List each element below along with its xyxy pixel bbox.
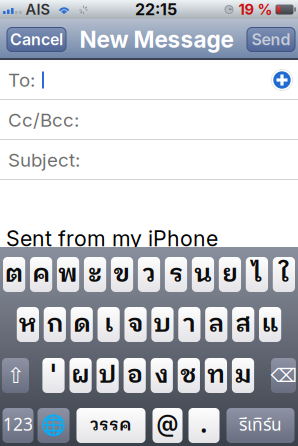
staticText: @	[156, 405, 179, 446]
staticText: า	[183, 304, 196, 345]
staticText: New Message	[79, 26, 233, 53]
button[interactable]: วรรค	[76, 408, 145, 443]
staticText: ท	[207, 355, 225, 396]
button[interactable]: ย	[219, 257, 241, 292]
staticText: อ	[127, 355, 143, 396]
staticText: ด	[73, 304, 91, 345]
staticText: ก	[46, 304, 63, 345]
button[interactable]: ห	[17, 307, 39, 342]
button[interactable]: ไ	[246, 257, 268, 292]
staticText: 🌐	[41, 414, 66, 437]
staticText: ช	[180, 355, 197, 396]
button[interactable]: ล	[205, 307, 227, 342]
button[interactable]: บ	[151, 307, 174, 342]
button[interactable]: ง	[151, 358, 173, 393]
button[interactable]: ท	[205, 358, 227, 393]
staticText: ไ	[252, 254, 262, 295]
staticText: บ	[153, 304, 171, 345]
staticText: ว	[142, 254, 155, 295]
staticText: พ	[58, 254, 78, 295]
staticText: เ	[104, 304, 113, 345]
staticText: ส	[235, 304, 251, 345]
staticText: Sent from my iPhone	[6, 226, 218, 251]
button[interactable]: จ	[124, 307, 147, 342]
button[interactable]: น	[192, 257, 214, 292]
staticText: ข	[113, 254, 130, 295]
staticText: ร	[169, 254, 183, 295]
button[interactable]: ก	[44, 307, 66, 342]
staticText: ค	[32, 254, 50, 295]
button[interactable]: ช	[178, 358, 200, 393]
button[interactable]: Cancel	[7, 27, 66, 51]
button[interactable]: 🌐	[37, 408, 69, 443]
button[interactable]: ค	[30, 257, 52, 292]
staticText: AIS	[26, 1, 51, 18]
button[interactable]: า	[178, 307, 200, 342]
button[interactable]: เ	[97, 307, 120, 342]
staticText: ง	[154, 355, 169, 396]
staticText: Send	[251, 30, 290, 49]
button[interactable]: @	[152, 408, 182, 443]
staticText: .	[200, 405, 208, 446]
button[interactable]: ม	[232, 358, 254, 393]
staticText: 123	[3, 412, 33, 439]
staticText: ใ	[279, 254, 289, 295]
staticText: Cancel	[10, 30, 63, 49]
button[interactable]: ข	[111, 257, 133, 292]
staticText: ม	[234, 355, 251, 396]
staticText: ป	[99, 355, 117, 396]
button[interactable]: ร	[165, 257, 187, 292]
button[interactable]: ใ	[273, 257, 295, 292]
button[interactable]: ว	[138, 257, 160, 292]
staticText: น	[194, 254, 212, 295]
button[interactable]: ⌫	[271, 358, 296, 393]
staticText: ะ	[88, 254, 102, 295]
staticText: '	[50, 355, 57, 396]
button[interactable]: แ	[259, 307, 281, 342]
staticText: ล	[208, 304, 224, 345]
staticText: ห	[18, 304, 37, 345]
staticText: ⇧	[6, 363, 24, 388]
staticText: 19 %	[238, 1, 272, 18]
button[interactable]: ป	[96, 358, 119, 393]
staticText: รีเทิร์น	[239, 412, 282, 439]
button[interactable]: ส	[232, 307, 254, 342]
button[interactable]: รีเทิร์น	[226, 408, 294, 443]
button[interactable]: ด	[71, 307, 93, 342]
staticText: ต	[5, 254, 24, 295]
button[interactable]: Send	[247, 27, 295, 51]
staticText: Cc/Bcc:	[8, 109, 79, 131]
staticText: ผ	[71, 355, 90, 396]
staticText: To:	[8, 69, 35, 91]
staticText: จ	[127, 304, 143, 345]
staticText: 22:15	[135, 0, 177, 19]
button[interactable]: .	[188, 408, 219, 443]
staticText: แ	[262, 304, 279, 345]
button[interactable]: ผ	[69, 358, 92, 393]
button[interactable]: ะ	[84, 257, 106, 292]
staticText: Subject:	[8, 149, 80, 171]
button[interactable]: อ	[124, 358, 146, 393]
staticText: วรรค	[90, 411, 132, 440]
staticText: ย	[222, 254, 238, 295]
button[interactable]: พ	[57, 257, 79, 292]
button[interactable]: ต	[3, 257, 25, 292]
button[interactable]: ⇧	[2, 358, 29, 393]
button[interactable]: Add contact	[270, 68, 294, 92]
button[interactable]: '	[42, 358, 65, 393]
button[interactable]: 123	[2, 408, 33, 443]
staticText: ⌫	[270, 365, 296, 386]
